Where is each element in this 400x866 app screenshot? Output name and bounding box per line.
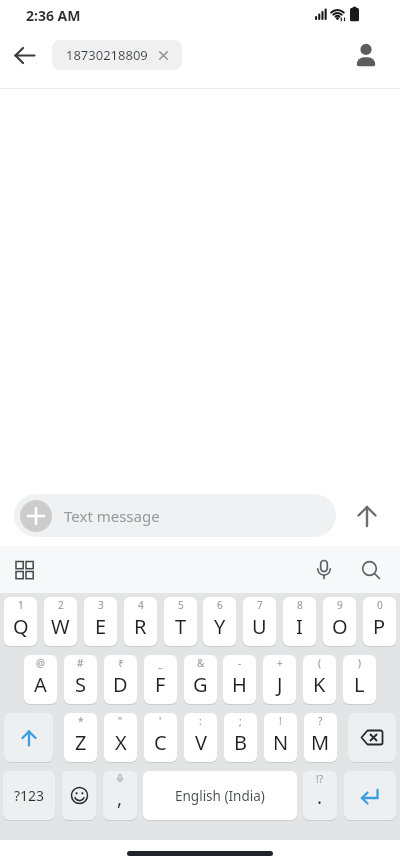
staticText: 3 bbox=[98, 598, 104, 612]
staticText: ?123 bbox=[14, 786, 45, 805]
staticText: W bbox=[51, 613, 70, 640]
button[interactable]: ! bbox=[264, 713, 297, 762]
button[interactable]: 2 bbox=[44, 597, 77, 646]
staticText: 4 bbox=[138, 598, 144, 612]
staticText: Y bbox=[214, 613, 226, 640]
button[interactable]: 1 bbox=[4, 597, 37, 646]
button[interactable]: & bbox=[184, 655, 217, 704]
staticText: X bbox=[115, 729, 127, 756]
staticText: _ bbox=[158, 656, 163, 670]
button[interactable] bbox=[62, 771, 96, 820]
staticText: # bbox=[77, 656, 84, 670]
staticText: ( bbox=[318, 656, 321, 670]
staticText: Z bbox=[75, 729, 87, 756]
staticText: + bbox=[277, 656, 283, 670]
staticText: ₹ bbox=[118, 656, 124, 670]
staticText: English (India) bbox=[175, 787, 265, 805]
staticText: T bbox=[175, 613, 187, 640]
staticText: H bbox=[232, 671, 247, 698]
staticText: 5 bbox=[178, 598, 184, 612]
staticText: K bbox=[313, 671, 326, 698]
staticText: Text message bbox=[64, 506, 160, 526]
staticText: ? bbox=[318, 714, 323, 728]
button[interactable] bbox=[13, 43, 37, 67]
staticText: 8 bbox=[297, 598, 303, 612]
button[interactable] bbox=[4, 713, 53, 762]
staticText: 0 bbox=[377, 598, 383, 612]
staticText: M bbox=[311, 729, 330, 756]
staticText: S bbox=[75, 671, 86, 698]
staticText: & bbox=[197, 656, 205, 670]
staticText: 9 bbox=[337, 598, 343, 612]
button[interactable] bbox=[312, 558, 336, 582]
button[interactable]: @ bbox=[24, 655, 57, 704]
staticText: Q bbox=[13, 613, 29, 640]
button[interactable] bbox=[359, 558, 383, 582]
button[interactable]: 8 bbox=[283, 597, 316, 646]
button[interactable]: + bbox=[263, 655, 296, 704]
staticText: ! bbox=[279, 714, 282, 728]
staticText: 7 bbox=[257, 598, 263, 612]
button[interactable]: 5 bbox=[164, 597, 197, 646]
button[interactable]: 0 bbox=[363, 597, 396, 646]
button[interactable] bbox=[354, 43, 378, 67]
staticText: : bbox=[199, 714, 202, 728]
button[interactable]: Text message bbox=[14, 494, 336, 537]
staticText: ' bbox=[159, 714, 162, 728]
staticText: E bbox=[95, 613, 107, 640]
staticText: . bbox=[317, 784, 323, 810]
staticText: V bbox=[195, 729, 207, 756]
button[interactable]: " bbox=[104, 713, 137, 762]
button[interactable] bbox=[127, 851, 273, 856]
button[interactable]: ( bbox=[303, 655, 336, 704]
staticText: 2:36 AM bbox=[26, 6, 81, 25]
staticText: U bbox=[252, 613, 267, 640]
staticText: 18730218809 bbox=[66, 46, 148, 64]
button[interactable]: 3 bbox=[84, 597, 117, 646]
button[interactable]: ? bbox=[304, 713, 337, 762]
staticText: ; bbox=[239, 714, 242, 728]
button[interactable]: - bbox=[223, 655, 256, 704]
staticText: !? bbox=[316, 772, 324, 786]
button[interactable]: 9 bbox=[323, 597, 356, 646]
button[interactable]: ' bbox=[144, 713, 177, 762]
staticText: L bbox=[354, 671, 365, 698]
staticText: @ bbox=[36, 656, 45, 670]
staticText: F bbox=[155, 671, 166, 698]
staticText: 6 bbox=[217, 598, 223, 612]
button[interactable]: 18730218809 bbox=[52, 40, 182, 70]
button[interactable]: * bbox=[64, 713, 97, 762]
button[interactable]: ; bbox=[224, 713, 257, 762]
staticText: R bbox=[134, 613, 147, 640]
button[interactable]: 4 bbox=[124, 597, 157, 646]
staticText: A bbox=[34, 671, 47, 698]
button[interactable] bbox=[353, 502, 381, 530]
staticText: P bbox=[373, 613, 386, 640]
staticText: " bbox=[118, 714, 123, 728]
staticText: D bbox=[113, 671, 128, 698]
button[interactable] bbox=[348, 713, 396, 762]
staticText: J bbox=[277, 671, 283, 698]
button[interactable]: ₹ bbox=[104, 655, 137, 704]
staticText: O bbox=[332, 613, 348, 640]
button[interactable] bbox=[344, 771, 396, 820]
button[interactable]: English (India) bbox=[143, 771, 297, 820]
staticText: 1 bbox=[18, 598, 24, 612]
button[interactable]: !? bbox=[303, 771, 337, 820]
button[interactable]: 6 bbox=[203, 597, 236, 646]
button[interactable]: , bbox=[103, 771, 137, 820]
staticText: , bbox=[117, 785, 123, 811]
button[interactable]: _ bbox=[144, 655, 177, 704]
staticText: N bbox=[273, 729, 289, 756]
staticText: 2 bbox=[58, 598, 64, 612]
staticText: - bbox=[238, 656, 242, 670]
button[interactable]: ) bbox=[343, 655, 376, 704]
button[interactable] bbox=[15, 560, 35, 580]
staticText: C bbox=[154, 729, 167, 756]
button[interactable]: : bbox=[184, 713, 217, 762]
button[interactable]: 7 bbox=[243, 597, 276, 646]
button[interactable]: # bbox=[64, 655, 97, 704]
staticText: I bbox=[296, 613, 303, 640]
button[interactable]: ?123 bbox=[3, 771, 55, 820]
staticText: ) bbox=[358, 656, 361, 670]
